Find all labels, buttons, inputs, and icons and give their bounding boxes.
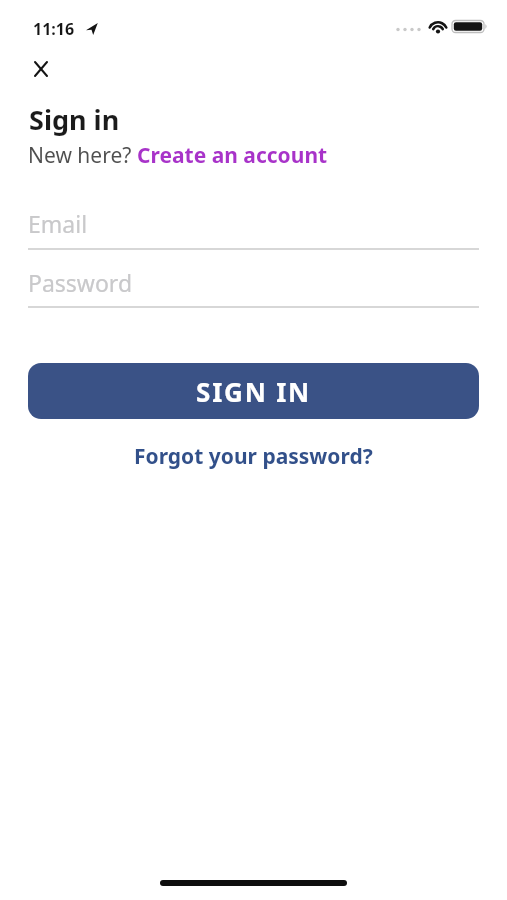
button[interactable] [28,55,54,83]
staticText: Email [28,208,88,239]
button[interactable]: Forgot your password? [134,442,373,471]
staticText: SIGN IN [196,374,312,409]
button[interactable]: Create an account [137,141,328,170]
staticText: 11:16 [33,18,75,40]
staticText: Sign in [29,101,120,138]
staticText: New here? [28,141,137,170]
button[interactable]: SIGN IN [28,363,479,419]
button[interactable]: Email [28,200,479,250]
button[interactable]: Password [28,259,479,308]
staticText: Password [28,267,133,298]
